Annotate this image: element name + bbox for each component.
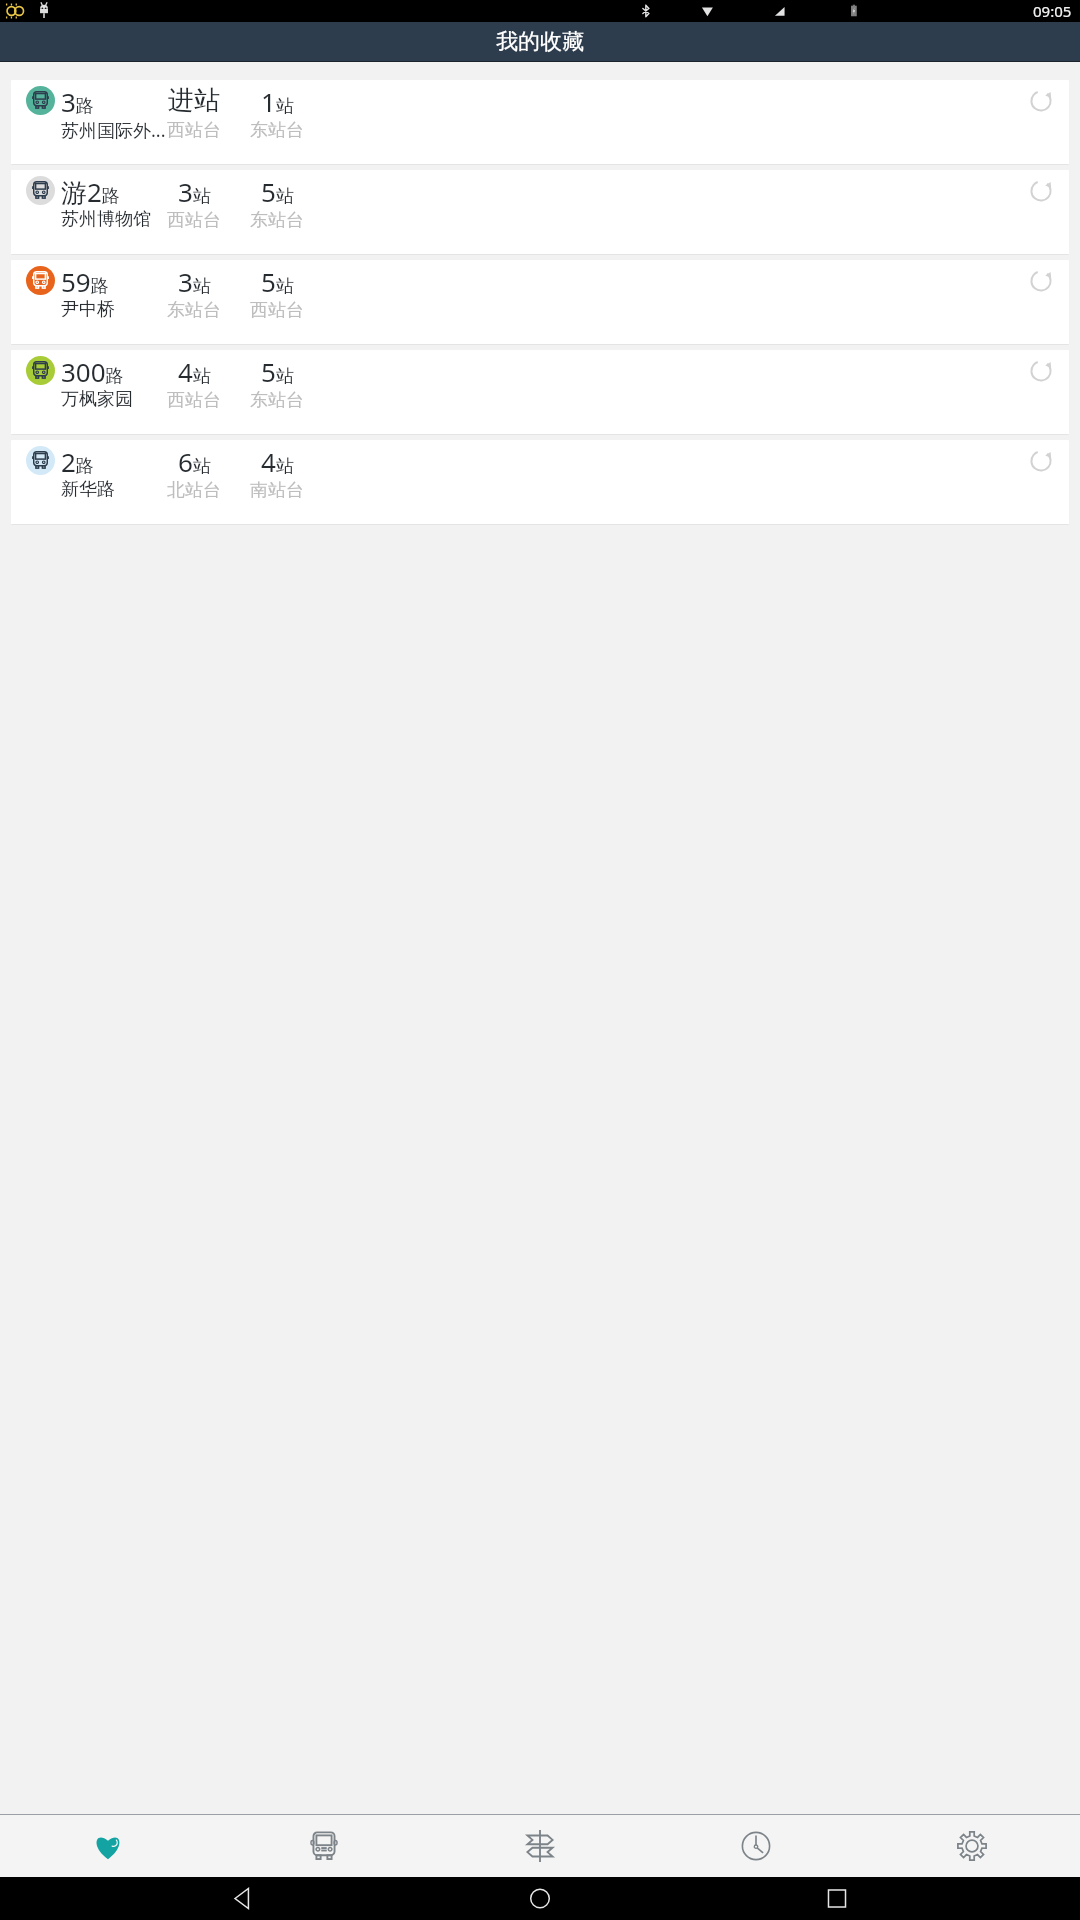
button[interactable]: 3路 [11, 80, 1069, 165]
button[interactable]: Refresh [1025, 355, 1057, 387]
staticText: 5站 [261, 264, 294, 299]
button[interactable]: Bus lines [216, 1815, 432, 1877]
staticText: 万枫家园 [61, 388, 133, 411]
button[interactable]: 2路 [11, 440, 1069, 525]
staticText: 西站台 [167, 389, 221, 412]
staticText: 南站台 [250, 479, 304, 502]
staticText: 新华路 [61, 478, 115, 501]
staticText: 3站 [178, 174, 211, 209]
button[interactable]: Favorites [0, 1815, 216, 1877]
staticText: 6站 [178, 444, 211, 479]
staticText: 东站台 [250, 119, 304, 142]
staticText: 东站台 [167, 299, 221, 322]
staticText: 1站 [261, 84, 294, 119]
button[interactable]: Refresh [1025, 175, 1057, 207]
button[interactable]: 59路 [11, 260, 1069, 345]
staticText: 进站 [168, 84, 220, 117]
staticText: 2路 [61, 444, 94, 479]
button[interactable]: Refresh [1025, 265, 1057, 297]
staticText: 东站台 [250, 209, 304, 232]
staticText: 北站台 [167, 479, 221, 502]
staticText: 苏州博物馆 [61, 208, 151, 231]
staticText: 5站 [261, 174, 294, 209]
staticText: 我的收藏 [496, 28, 584, 56]
staticText: 09:05 [1033, 1, 1072, 21]
button[interactable]: 游2路 [11, 170, 1069, 255]
staticText: 西站台 [167, 119, 221, 142]
staticText: 4站 [261, 444, 294, 479]
staticText: 苏州国际外... [61, 118, 166, 143]
button[interactable]: Timetable [648, 1815, 864, 1877]
staticText: 3路 [61, 84, 94, 119]
staticText: 东站台 [250, 389, 304, 412]
staticText: 3站 [178, 264, 211, 299]
staticText: 300路 [61, 354, 124, 389]
button[interactable]: Refresh [1025, 85, 1057, 117]
button[interactable]: Settings [864, 1815, 1080, 1877]
button[interactable]: Transfer [432, 1815, 648, 1877]
button[interactable]: Refresh [1025, 445, 1057, 477]
staticText: 游2路 [61, 174, 120, 210]
staticText: 5站 [261, 354, 294, 389]
button[interactable]: 300路 [11, 350, 1069, 435]
staticText: 59路 [61, 264, 109, 299]
staticText: 4站 [178, 354, 211, 389]
staticText: 西站台 [250, 299, 304, 322]
staticText: 西站台 [167, 209, 221, 232]
staticText: 尹中桥 [61, 298, 115, 321]
